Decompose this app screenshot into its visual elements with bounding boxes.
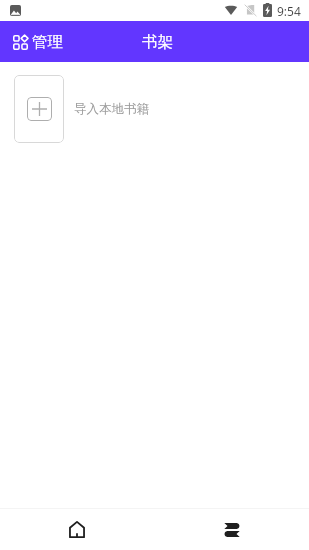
button[interactable]: 管理 <box>0 26 75 58</box>
button[interactable]: Bookshelf <box>154 509 309 550</box>
staticText: 书架 <box>142 32 173 52</box>
button[interactable]: Import local book <box>14 75 64 143</box>
staticText: 9:54 <box>277 3 301 19</box>
button[interactable]: Home <box>0 509 154 550</box>
staticText: 管理 <box>32 32 63 52</box>
staticText: 导入本地书籍 <box>74 101 149 117</box>
